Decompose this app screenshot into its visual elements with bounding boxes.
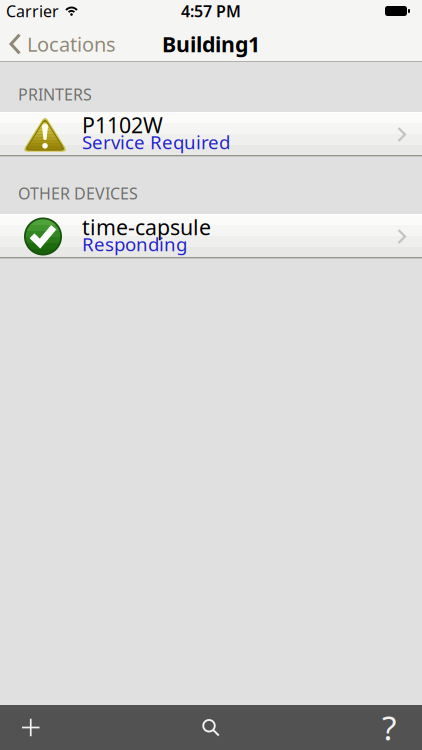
button[interactable]: time-capsule [0, 214, 422, 259]
staticText: Responding [82, 232, 187, 256]
staticText: time-capsule [82, 213, 211, 241]
button[interactable]: Add [0, 706, 59, 749]
staticText: PRINTERS [18, 84, 92, 105]
staticText: P1102W [82, 111, 163, 139]
staticText: Carrier [6, 0, 59, 22]
button[interactable]: Search [182, 706, 239, 749]
staticText: Locations [27, 31, 116, 57]
button[interactable]: Help [362, 700, 422, 750]
staticText: OTHER DEVICES [18, 183, 138, 204]
staticText: ? [382, 705, 396, 750]
button[interactable]: P1102W [0, 112, 422, 157]
button[interactable]: Back to Locations [0, 23, 116, 65]
staticText: Service Required [82, 130, 230, 154]
staticText: Building1 [162, 30, 260, 58]
staticText: 4:57 PM [181, 0, 241, 22]
